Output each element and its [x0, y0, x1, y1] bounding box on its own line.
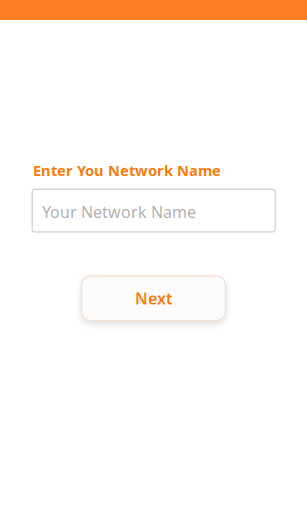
- staticText: Your Network Name: [42, 201, 196, 222]
- textField[interactable]: Your Network Name: [32, 189, 275, 232]
- button[interactable]: Next: [81, 276, 225, 320]
- staticText: Next: [135, 288, 172, 309]
- staticText: Enter You Network Name: [33, 161, 221, 180]
